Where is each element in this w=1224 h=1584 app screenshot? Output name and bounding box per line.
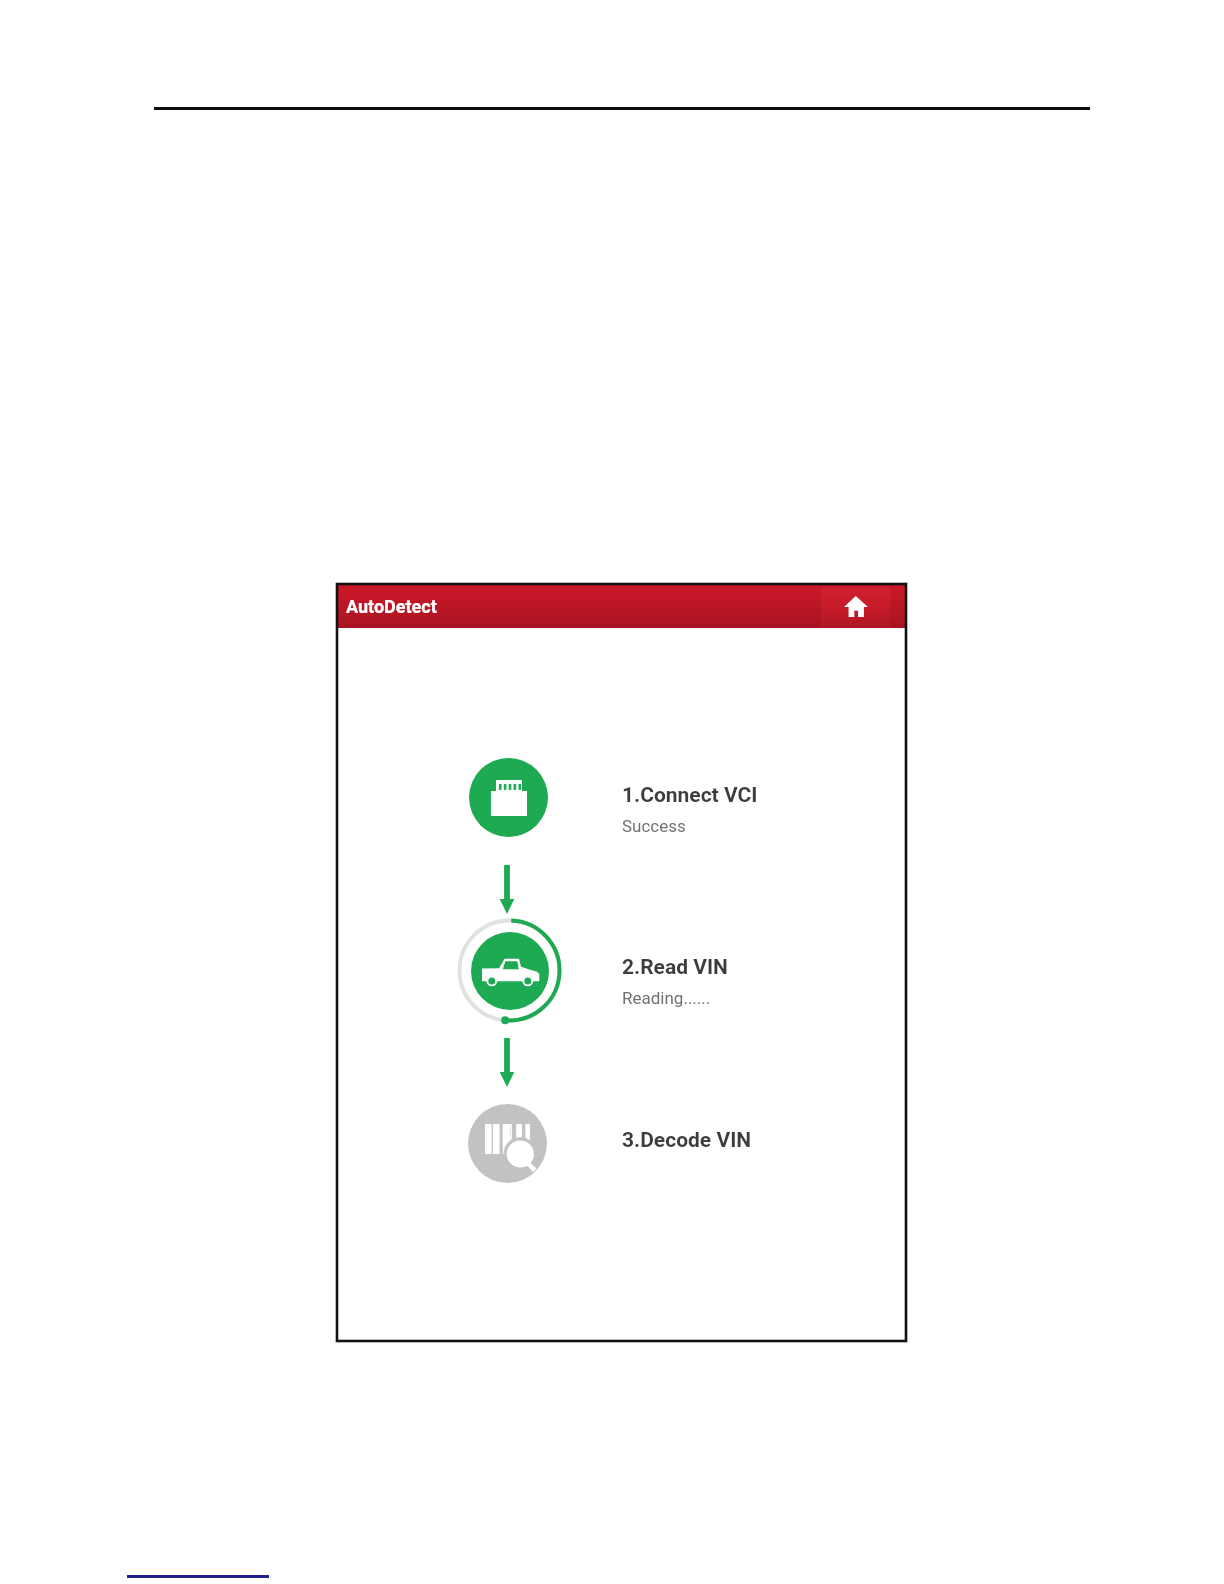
- staticText: AutoDetect: [346, 596, 437, 617]
- button[interactable]: 3.Decode VIN: [622, 1128, 752, 1153]
- button[interactable]: Read VIN: [471, 932, 549, 1010]
- staticText: 3.Decode VIN: [622, 1128, 752, 1153]
- button[interactable]: Connect VCI: [469, 758, 548, 837]
- button[interactable]: 2.Read VIN: [622, 955, 728, 1008]
- staticText: 1.Connect VCI: [622, 783, 758, 808]
- staticText: Success: [622, 816, 686, 836]
- button[interactable]: Decode VIN: [468, 1104, 547, 1183]
- staticText: Reading......: [622, 988, 711, 1008]
- button[interactable]: Home: [821, 587, 890, 628]
- staticText: 2.Read VIN: [622, 955, 728, 980]
- button[interactable]: 1.Connect VCI: [622, 783, 758, 836]
